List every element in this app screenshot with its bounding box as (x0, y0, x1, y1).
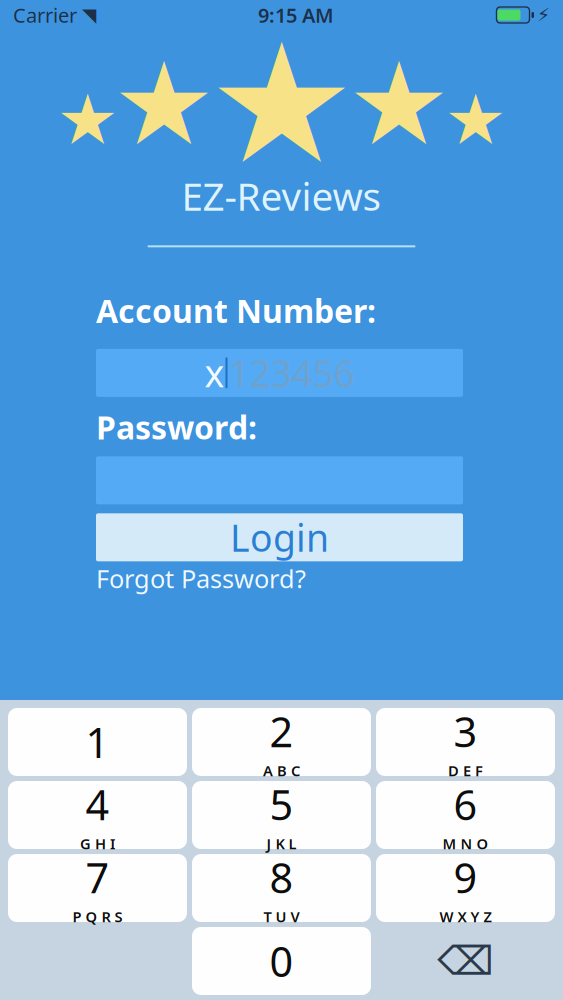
staticText: ★ (347, 39, 450, 169)
staticText: 6 (453, 777, 477, 832)
staticText: M N O (442, 834, 488, 853)
staticText: ★ (56, 80, 118, 159)
button[interactable]: 6 (376, 781, 555, 849)
button[interactable]: 4 (8, 781, 187, 849)
button[interactable]: 9 (376, 854, 555, 922)
staticText: Account Number: (96, 289, 376, 332)
button[interactable]: x (96, 349, 463, 397)
staticText: 123456 (228, 348, 354, 398)
staticText: Password: (96, 406, 257, 448)
button[interactable]: 1 (8, 708, 187, 776)
button[interactable]: Forgot Password? (96, 565, 463, 591)
button[interactable]: Login (96, 513, 463, 561)
staticText: 5 (269, 777, 293, 832)
staticText: 4 (85, 777, 109, 832)
staticText: 7 (85, 850, 109, 905)
staticText: ⚡︎ (537, 4, 550, 26)
button[interactable]: 2 (192, 708, 371, 776)
staticText: ★ (112, 39, 215, 169)
staticText: G H I (80, 834, 115, 853)
button[interactable]: 5 (192, 781, 371, 849)
staticText: D E F (448, 761, 483, 780)
staticText: 9 (453, 850, 477, 905)
button[interactable]: 0 (192, 927, 371, 995)
staticText: ★ (207, 10, 355, 198)
staticText: Login (230, 512, 329, 562)
staticText: 0 (269, 934, 293, 988)
staticText: x (204, 348, 224, 398)
button[interactable]: 3 (376, 708, 555, 776)
staticText: 1 (85, 715, 109, 769)
staticText: W X Y Z (439, 907, 491, 926)
staticText: P Q R S (72, 907, 122, 926)
staticText: 3 (453, 704, 477, 759)
staticText: EZ-Reviews (181, 170, 381, 221)
button[interactable]: 8 (192, 854, 371, 922)
staticText: Forgot Password? (96, 561, 306, 595)
button[interactable]: Delete (376, 927, 555, 995)
staticText: J K L (266, 834, 296, 853)
staticText: Carrier (13, 2, 77, 28)
staticText: ◥ (82, 4, 96, 26)
staticText: 8 (269, 850, 293, 905)
button[interactable]: 7 (8, 854, 187, 922)
staticText: T U V (263, 907, 299, 926)
staticText: ★ (444, 80, 506, 159)
staticText: A B C (263, 761, 300, 780)
staticText: ⌫ (437, 938, 494, 984)
staticText: 9:15 AM (258, 2, 334, 28)
staticText: 2 (269, 704, 293, 759)
